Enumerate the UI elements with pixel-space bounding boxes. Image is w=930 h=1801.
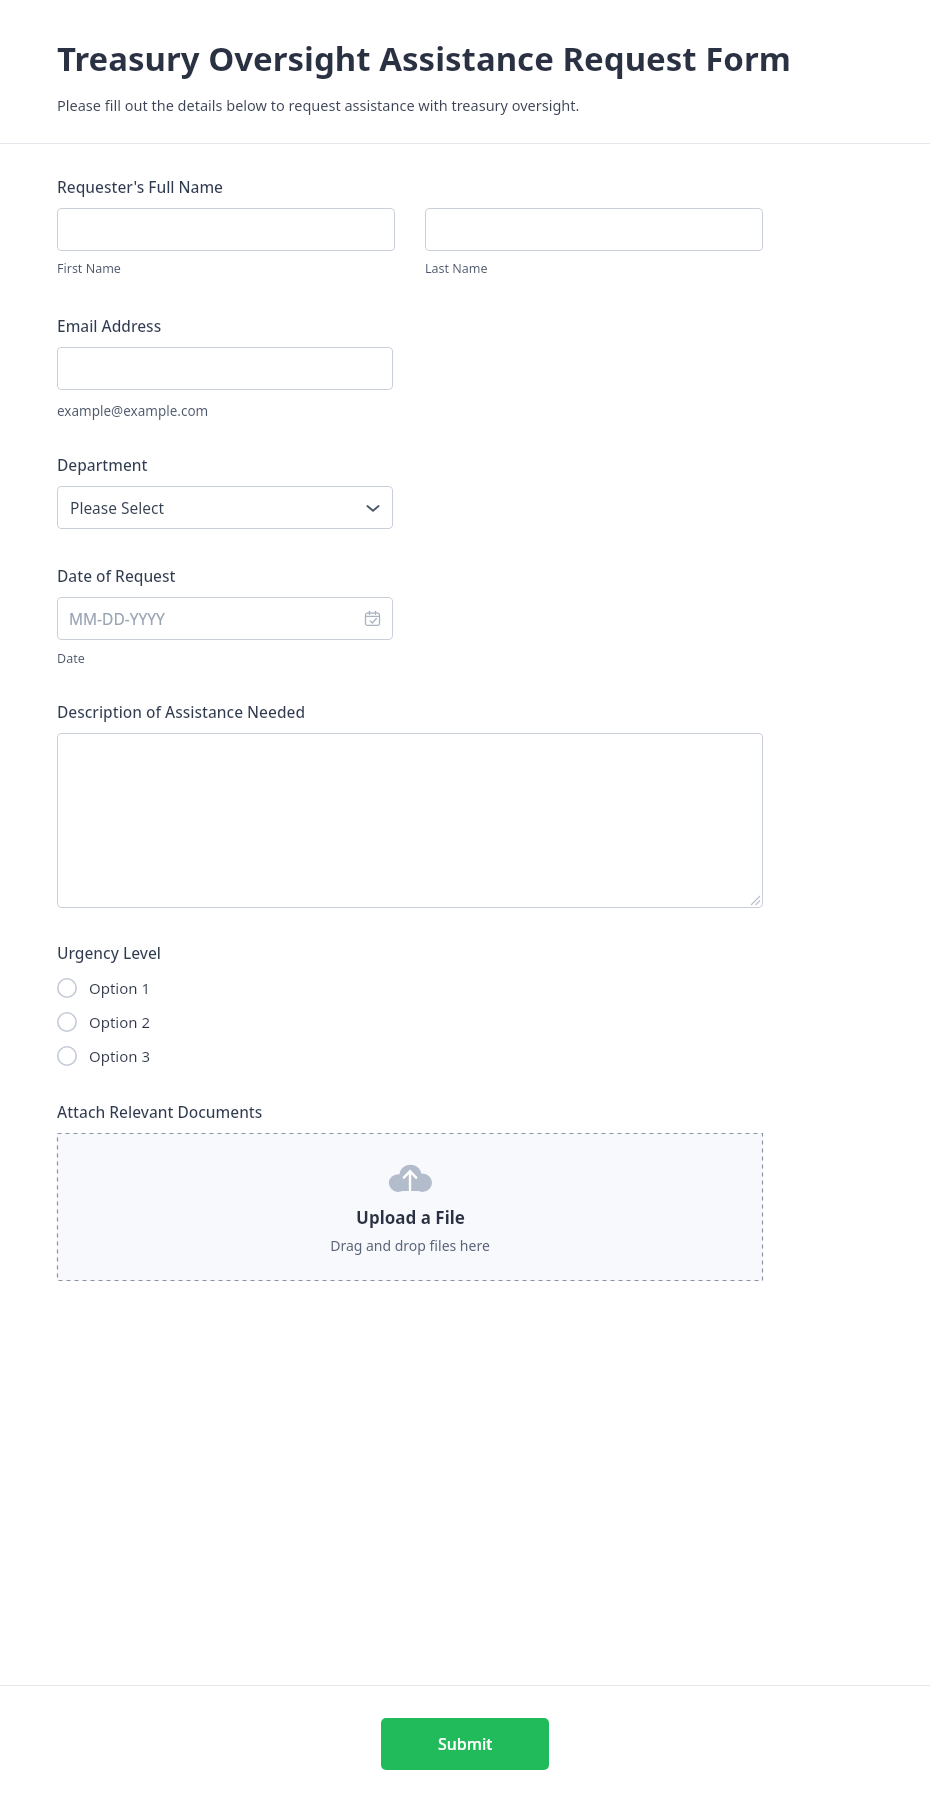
staticText: Option 3 [89,1046,151,1066]
staticText: Please Select [70,497,165,518]
staticText: Last Name [425,260,488,277]
button[interactable]: Upload a file [57,1133,763,1281]
button[interactable]: Option 2 [57,1005,151,1039]
staticText: Requester's Full Name [57,176,224,197]
staticText: Option 1 [89,978,151,998]
staticText: example@example.com [57,402,209,420]
staticText: Date of Request [57,565,176,586]
staticText: Upload a File [356,1206,465,1229]
staticText: Treasury Oversight Assistance Request Fo… [57,36,791,81]
staticText: Email Address [57,315,162,336]
staticText: Attach Relevant Documents [57,1101,263,1122]
staticText: Submit [438,1733,493,1755]
staticText: MM-DD-YYYY [69,608,165,629]
staticText: Drag and drop files here [330,1236,490,1255]
button[interactable] [57,733,763,908]
button[interactable]: Please Select [57,486,393,529]
staticText: Date [57,650,85,667]
staticText: Urgency Level [57,942,162,963]
staticText: Description of Assistance Needed [57,701,306,722]
button[interactable]: Option 3 [57,1039,151,1073]
staticText: Option 2 [89,1012,151,1032]
other: Upload a file [388,1160,432,1194]
button[interactable]: MM-DD-YYYY [57,597,393,640]
staticText: First Name [57,260,121,277]
button[interactable] [57,347,393,390]
button[interactable]: Submit [381,1718,549,1770]
button[interactable]: Option 1 [57,971,151,1005]
staticText: Department [57,454,148,475]
button[interactable] [425,208,763,251]
other: Pick date [365,611,380,626]
staticText: Please fill out the details below to req… [57,95,580,115]
button[interactable] [57,208,395,251]
